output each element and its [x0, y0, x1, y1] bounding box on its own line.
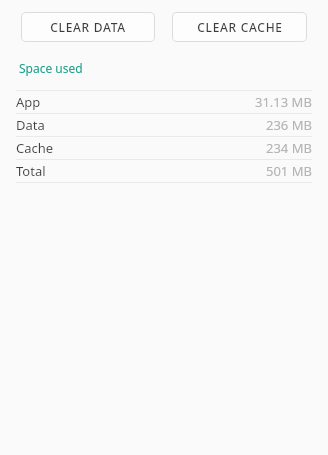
staticText: Total	[16, 162, 46, 180]
button[interactable]: Data	[16, 114, 312, 136]
staticText: Cache	[16, 139, 54, 157]
button[interactable]: App	[16, 91, 312, 113]
staticText: 236 MB	[266, 116, 312, 134]
staticText: Data	[16, 116, 45, 134]
staticText: 31.13 MB	[255, 93, 312, 111]
staticText: CLEAR CACHE	[197, 19, 283, 35]
staticText: App	[16, 93, 41, 111]
button[interactable]: CLEAR CACHE	[172, 12, 307, 42]
button[interactable]: Cache	[16, 137, 312, 159]
button[interactable]: CLEAR DATA	[21, 12, 155, 42]
button[interactable]: Total	[16, 160, 312, 182]
staticText: Space used	[19, 60, 83, 76]
staticText: CLEAR DATA	[50, 19, 126, 35]
staticText: 234 MB	[266, 139, 312, 157]
staticText: 501 MB	[266, 162, 312, 180]
